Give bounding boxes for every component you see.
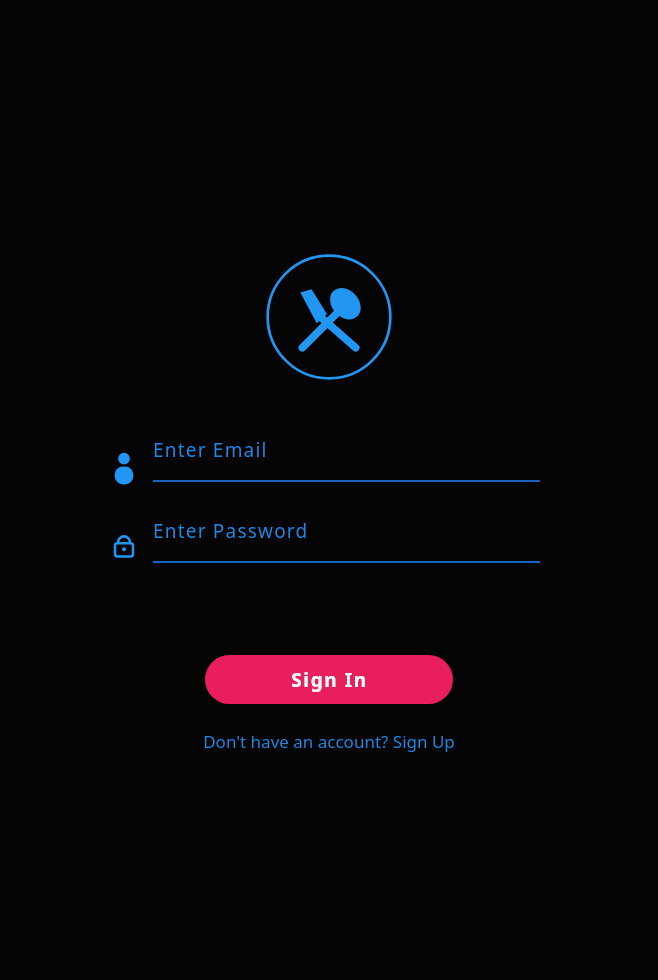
staticText: Enter Email <box>153 437 268 463</box>
other: Password <box>95 508 153 588</box>
other: Email <box>95 427 153 507</box>
staticText: Enter Password <box>153 518 309 544</box>
button[interactable]: Sign In <box>205 655 453 704</box>
staticText: Don't have an account? Sign Up <box>203 730 455 753</box>
staticText: Sign In <box>291 667 368 693</box>
button[interactable]: Password <box>95 508 557 588</box>
button[interactable]: Email <box>95 427 557 507</box>
button[interactable]: Don't have an account? Sign Up <box>195 726 463 757</box>
